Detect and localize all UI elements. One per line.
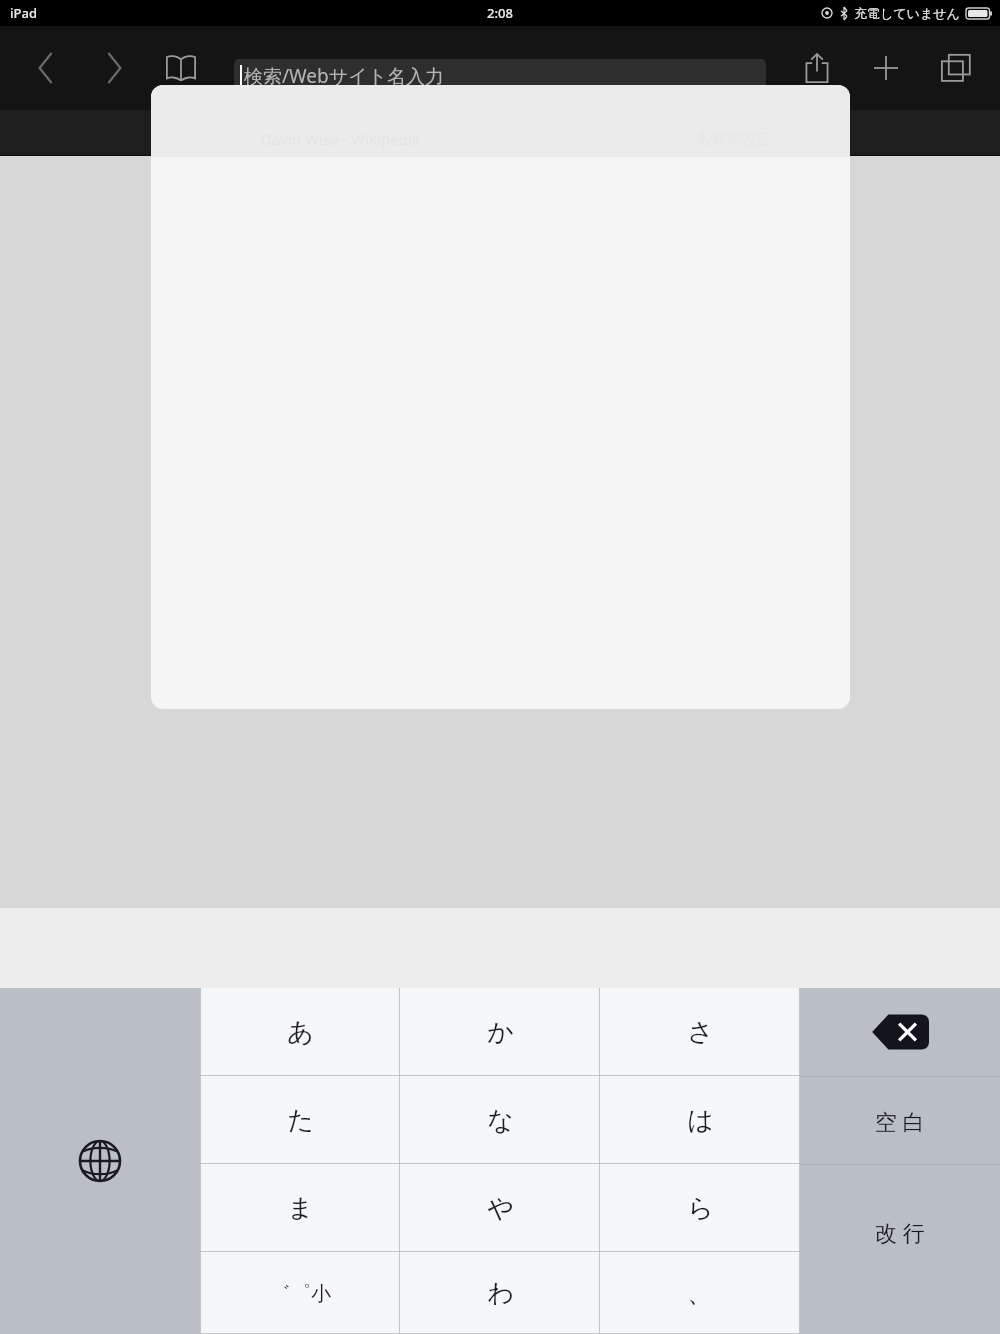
staticText: わ: [487, 1277, 514, 1310]
staticText: や: [487, 1192, 514, 1225]
staticText: ゛゜小: [270, 1281, 331, 1306]
button[interactable]: 名称未設定: [500, 110, 1000, 156]
staticText: 検索/Webサイト名入力: [244, 63, 445, 89]
staticText: 空 白: [875, 1106, 925, 1136]
button[interactable]: さ: [600, 988, 800, 1076]
button[interactable]: Share: [793, 44, 841, 92]
button[interactable]: Bookmarks: [157, 44, 205, 92]
staticText: iPad: [10, 4, 37, 22]
staticText: か: [487, 1016, 514, 1049]
button[interactable]: わ: [400, 1252, 600, 1334]
button[interactable]: ら: [600, 1164, 800, 1252]
button[interactable]: は: [600, 1076, 800, 1164]
button[interactable]: 改 行: [800, 1165, 1000, 1334]
button[interactable]: Show tabs: [932, 44, 980, 92]
button[interactable]: た: [200, 1076, 400, 1164]
staticText: 改 行: [875, 1217, 925, 1247]
button[interactable]: 検索/Webサイト名入力: [234, 59, 766, 93]
staticText: は: [687, 1104, 714, 1137]
staticText: 、: [687, 1277, 713, 1310]
button[interactable]: 、: [600, 1252, 800, 1334]
button[interactable]: 空 白: [800, 1077, 1000, 1164]
button[interactable]: Switch keyboard: [0, 988, 200, 1334]
staticText: ま: [287, 1192, 314, 1225]
button[interactable]: Back: [22, 44, 70, 92]
button[interactable]: ま: [200, 1164, 400, 1252]
staticText: ら: [687, 1192, 714, 1225]
button[interactable]: New tab: [862, 44, 910, 92]
button[interactable]: ゛゜小: [200, 1252, 400, 1334]
staticText: 充電していません: [854, 5, 960, 21]
staticText: あ: [287, 1016, 314, 1049]
button[interactable]: Delete: [800, 988, 1000, 1076]
staticText: さ: [687, 1016, 714, 1049]
button[interactable]: David Wise - Wikipedia: [151, 85, 850, 709]
button[interactable]: Forward: [90, 44, 138, 92]
button[interactable]: か: [400, 988, 600, 1076]
staticText: 2:08: [487, 4, 513, 22]
button[interactable]: あ: [200, 988, 400, 1076]
staticText: な: [487, 1104, 514, 1137]
button[interactable]: David Wise - Wikipedia: [0, 110, 500, 156]
button[interactable]: や: [400, 1164, 600, 1252]
button[interactable]: な: [400, 1076, 600, 1164]
staticText: た: [287, 1104, 314, 1137]
